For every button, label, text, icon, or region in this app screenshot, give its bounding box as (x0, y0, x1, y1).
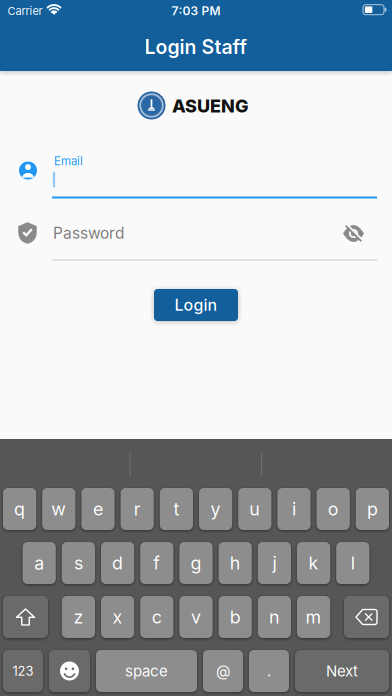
staticText: ASUENG (172, 95, 249, 117)
staticText: Login Staff (144, 35, 247, 59)
staticText: b (230, 606, 241, 628)
button[interactable]: t (160, 488, 193, 530)
staticText: f (153, 552, 160, 574)
button[interactable]: y (199, 488, 232, 530)
button[interactable]: x (101, 596, 134, 638)
staticText: a (34, 552, 44, 574)
button[interactable]: space (96, 650, 197, 692)
staticText: q (14, 498, 25, 520)
staticText: 7:03 PM (171, 4, 220, 18)
staticText: r (134, 498, 141, 520)
button[interactable]: s (62, 542, 95, 584)
button[interactable]: q (3, 488, 36, 530)
button[interactable]: Email (19, 161, 37, 179)
button[interactable]: m (297, 596, 330, 638)
staticText: c (152, 606, 162, 628)
button[interactable]: w (42, 488, 75, 530)
button[interactable]: d (101, 542, 134, 584)
button[interactable]: a (23, 542, 56, 584)
button[interactable]: o (317, 488, 350, 530)
button[interactable]: g (179, 542, 213, 584)
staticText: u (249, 498, 260, 520)
button[interactable]: Emoji (49, 650, 90, 692)
staticText: s (74, 552, 83, 574)
staticText: o (328, 498, 339, 520)
staticText: h (230, 552, 241, 574)
button[interactable]: i (277, 488, 311, 530)
button[interactable]: c (140, 596, 173, 638)
staticText: @ (216, 662, 230, 680)
staticText: . (267, 662, 271, 680)
button[interactable]: Shift (3, 596, 48, 638)
staticText: x (113, 606, 123, 628)
button[interactable]: Delete (344, 596, 389, 638)
staticText: j (272, 552, 276, 574)
staticText: z (73, 606, 83, 628)
staticText: Login (174, 295, 217, 315)
button[interactable]: 123 (3, 650, 43, 692)
button[interactable]: j (258, 542, 291, 584)
button[interactable]: u (238, 488, 271, 530)
button[interactable]: n (258, 596, 291, 638)
button[interactable]: k (297, 542, 330, 584)
button[interactable]: @ (203, 650, 243, 692)
staticText: p (367, 498, 378, 520)
button[interactable]: Show password (343, 223, 364, 243)
button[interactable]: . (249, 650, 289, 692)
staticText: y (211, 498, 221, 520)
staticText: m (306, 606, 322, 628)
staticText: w (51, 498, 66, 520)
staticText: v (191, 606, 201, 628)
button[interactable]: r (121, 488, 154, 530)
button[interactable]: Login (154, 289, 238, 321)
button[interactable]: Next (295, 650, 389, 692)
button[interactable]: f (140, 542, 173, 584)
button[interactable]: z (62, 596, 95, 638)
staticText: g (190, 552, 201, 574)
button[interactable]: e (81, 488, 115, 530)
staticText: k (309, 552, 319, 574)
staticText: i (292, 498, 296, 520)
staticText: l (351, 552, 355, 574)
button[interactable]: h (219, 542, 252, 584)
staticText: e (93, 498, 103, 520)
staticText: space (125, 662, 168, 680)
button[interactable]: p (356, 488, 389, 530)
staticText: t (173, 498, 179, 520)
button[interactable]: v (179, 596, 213, 638)
button[interactable]: b (219, 596, 252, 638)
button[interactable]: l (336, 542, 369, 584)
staticText: 123 (12, 663, 33, 679)
staticText: Email (54, 154, 83, 168)
staticText: n (269, 606, 280, 628)
staticText: Carrier (7, 4, 42, 18)
staticText: Next (326, 662, 358, 680)
staticText: d (112, 552, 123, 574)
staticText: Password (53, 224, 124, 242)
